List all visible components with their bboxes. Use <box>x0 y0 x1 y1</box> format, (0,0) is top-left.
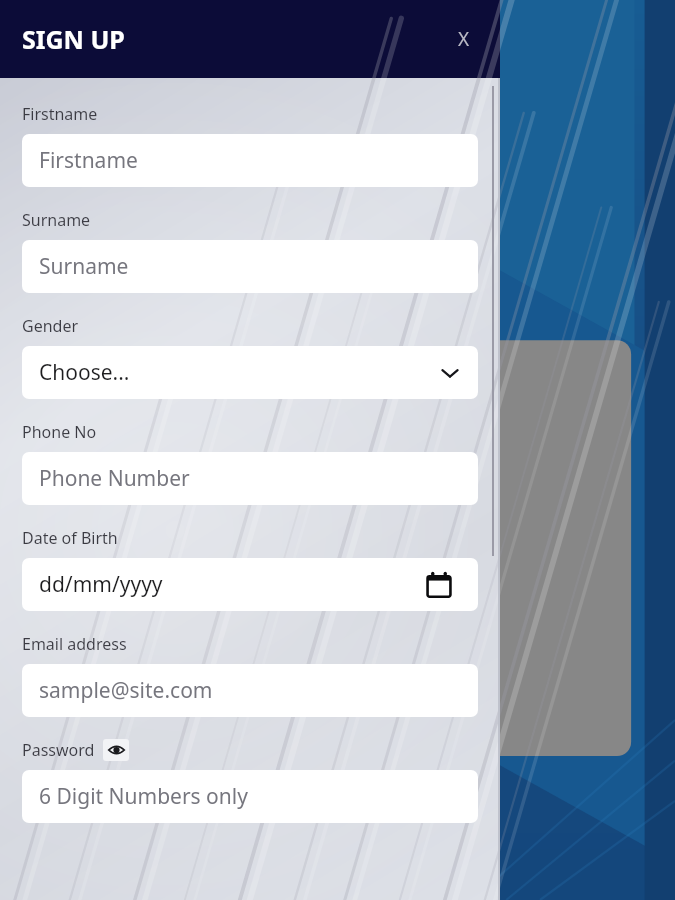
staticText: dd/mm/yyyy <box>39 570 163 599</box>
staticText: Surname <box>22 209 91 231</box>
button[interactable]: Phone Number <box>22 452 478 505</box>
button[interactable]: Show password <box>103 739 129 761</box>
button[interactable]: sample@site.com <box>22 664 478 717</box>
staticText: Phone Number <box>39 464 190 493</box>
staticText: Date of Birth <box>22 527 118 549</box>
button[interactable]: Choose... <box>22 346 478 399</box>
staticText: Firstname <box>39 146 138 175</box>
staticText: Phone No <box>22 421 97 443</box>
staticText: Password <box>22 739 95 761</box>
button[interactable]: 6 Digit Numbers only <box>22 770 478 823</box>
staticText: Firstname <box>22 103 98 125</box>
staticText: 6 Digit Numbers only <box>39 782 248 811</box>
staticText: Email address <box>22 633 127 655</box>
staticText: X <box>458 26 470 52</box>
button[interactable]: Close <box>442 17 486 61</box>
staticText: SIGN UP <box>22 22 125 56</box>
staticText: sample@site.com <box>39 676 213 705</box>
staticText: Surname <box>39 252 129 281</box>
button[interactable]: dd/mm/yyyy <box>22 558 478 611</box>
staticText: Gender <box>22 315 79 337</box>
staticText: Choose... <box>39 358 130 387</box>
button[interactable]: Surname <box>22 240 478 293</box>
button[interactable]: Firstname <box>22 134 478 187</box>
